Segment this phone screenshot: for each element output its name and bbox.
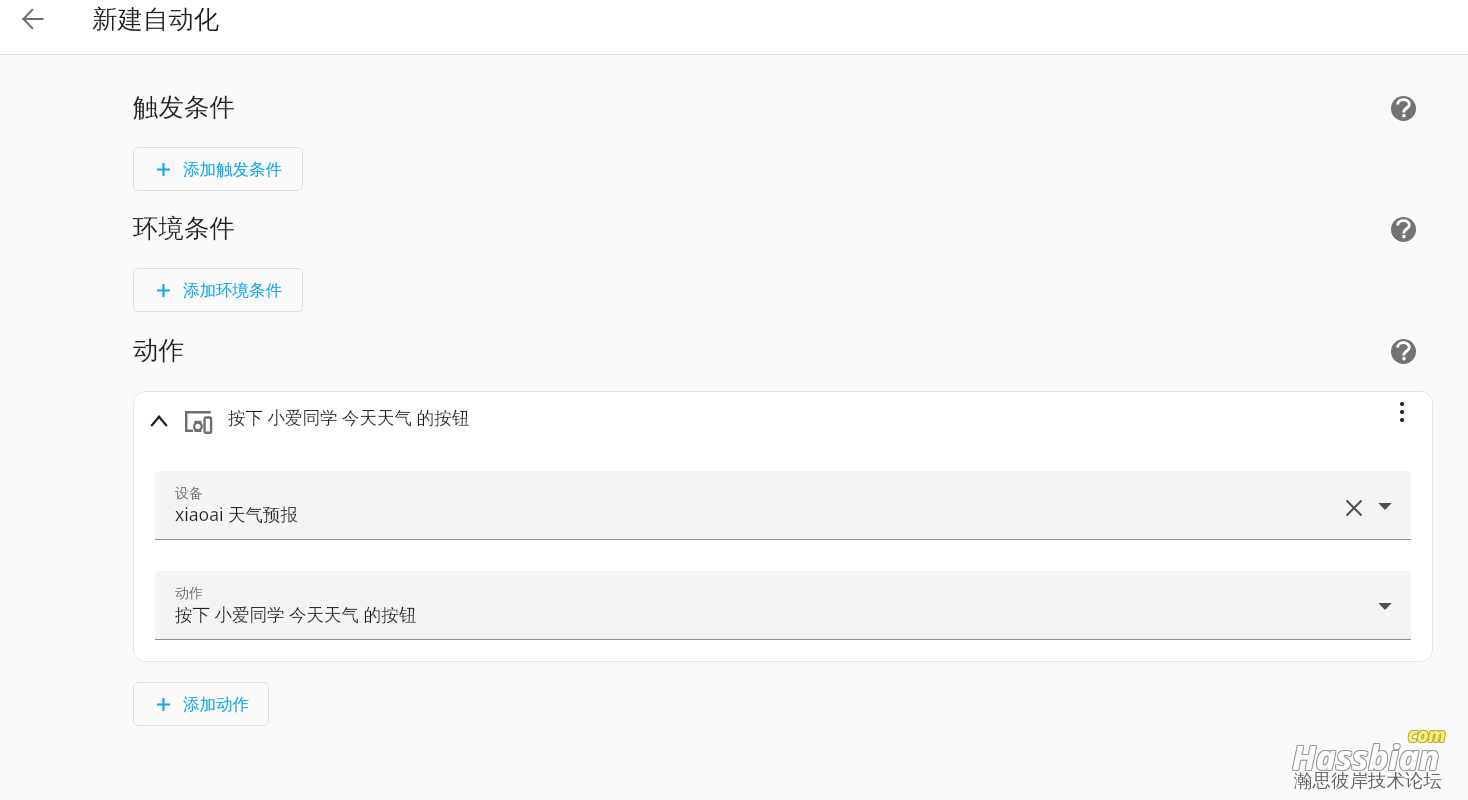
button[interactable]: 添加动作: [133, 682, 269, 726]
staticText: 瀚思彼岸技术论坛: [1294, 769, 1442, 792]
staticText: Hassbian: [1291, 734, 1439, 780]
staticText: com: [1407, 723, 1445, 749]
staticText: Hassbian: [1293, 734, 1441, 780]
staticText: 动作: [175, 585, 203, 603]
button[interactable]: Back: [9, 0, 57, 43]
staticText: 动作: [133, 334, 184, 366]
staticText: 添加环境条件: [183, 280, 282, 301]
staticText: com: [1408, 723, 1446, 749]
button[interactable]: 动作: [155, 571, 1411, 640]
staticText: com: [1407, 721, 1445, 747]
button[interactable]: Collapse: [133, 391, 1433, 449]
button[interactable]: Show options: [1371, 592, 1399, 620]
staticText: com: [1409, 723, 1447, 749]
button[interactable]: More options: [1382, 392, 1422, 432]
button[interactable]: Clear: [1339, 493, 1369, 523]
staticText: 添加动作: [183, 694, 249, 715]
staticText: 按下 小爱同学 今天天气 的按钮: [228, 405, 470, 429]
staticText: xiaoai 天气预报: [175, 502, 299, 526]
button[interactable]: Help: [1383, 88, 1423, 128]
staticText: Hassbian: [1291, 735, 1439, 781]
staticText: Hassbian: [1293, 735, 1441, 781]
button[interactable]: Show options: [1371, 492, 1399, 520]
button[interactable]: Help: [1383, 331, 1423, 371]
staticText: 触发条件: [133, 91, 235, 123]
staticText: com: [1409, 722, 1447, 748]
staticText: 新建自动化: [92, 3, 220, 35]
button[interactable]: Collapse: [139, 401, 179, 441]
staticText: Hassbian: [1292, 734, 1440, 780]
staticText: com: [1408, 722, 1446, 748]
staticText: 添加触发条件: [183, 159, 282, 180]
button[interactable]: 设备: [155, 471, 1411, 540]
staticText: Hassbian: [1292, 735, 1440, 781]
button[interactable]: Help: [1383, 209, 1423, 249]
staticText: Hassbian: [1292, 733, 1440, 779]
staticText: 按下 小爱同学 今天天气 的按钮: [175, 602, 417, 626]
staticText: Hassbian: [1291, 733, 1439, 779]
button[interactable]: 添加触发条件: [133, 147, 303, 191]
button[interactable]: 添加环境条件: [133, 268, 303, 312]
staticText: com: [1407, 722, 1445, 748]
staticText: 环境条件: [133, 212, 235, 244]
staticText: 设备: [175, 485, 203, 503]
staticText: Hassbian: [1293, 733, 1441, 779]
staticText: com: [1408, 721, 1446, 747]
staticText: com: [1409, 721, 1447, 747]
